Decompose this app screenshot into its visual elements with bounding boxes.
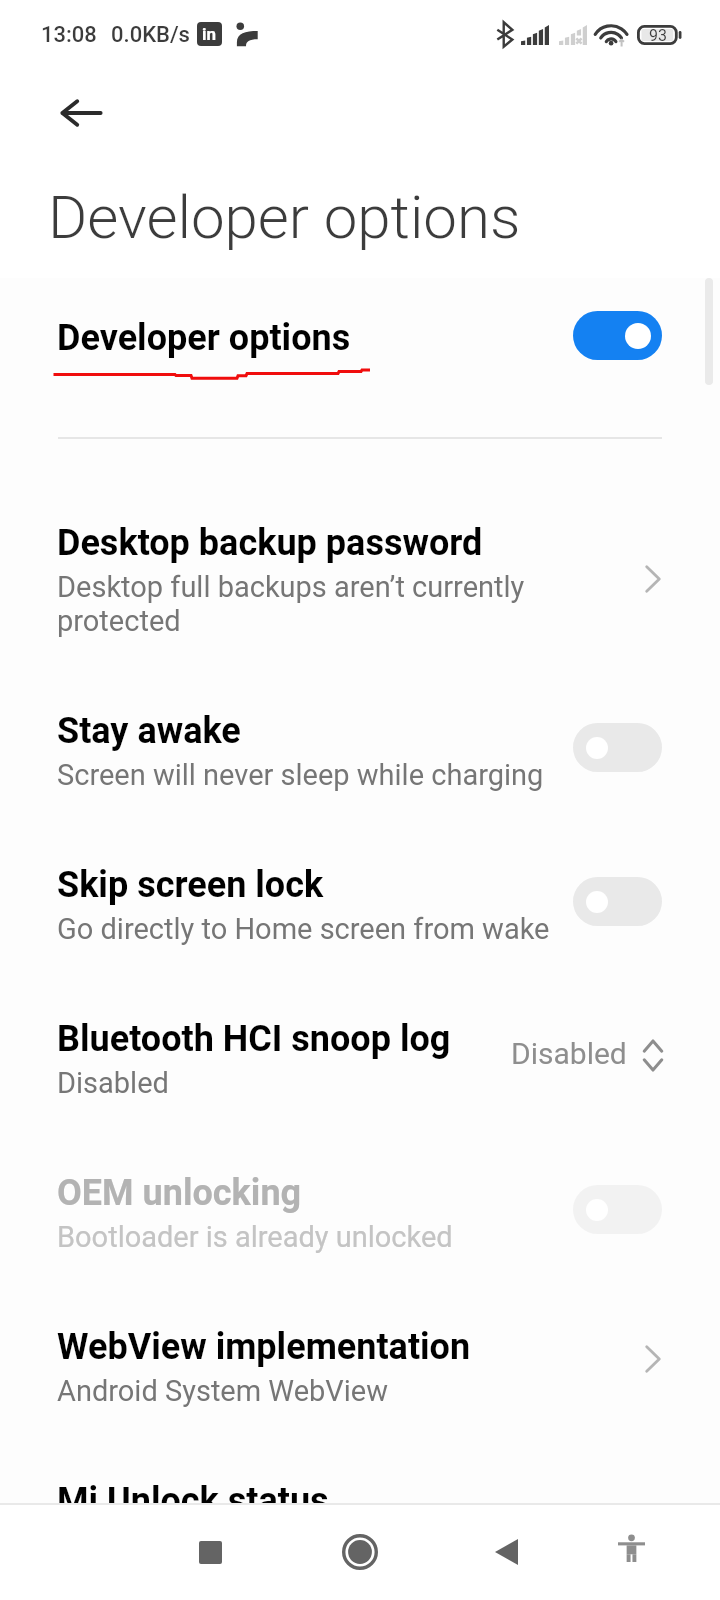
staticText: Skip screen lock xyxy=(57,864,324,906)
button[interactable]: WebView implementation xyxy=(0,1307,720,1417)
staticText: Bootloader is already unlocked xyxy=(57,1220,453,1254)
button[interactable]: Toggle xyxy=(573,877,662,926)
button[interactable]: Open xyxy=(633,559,673,599)
staticText: Desktop full backups aren’t currently pr… xyxy=(57,570,525,638)
button[interactable]: Stay awake xyxy=(0,691,720,801)
staticText: Developer options xyxy=(48,182,521,252)
button[interactable]: Skip screen lock xyxy=(0,845,720,955)
staticText: Go directly to Home screen from wake xyxy=(57,912,550,946)
button[interactable]: Disabled xyxy=(508,1029,668,1073)
staticText: Mi Unlock status xyxy=(57,1480,329,1522)
button[interactable]: Accessibility xyxy=(598,1515,664,1581)
button[interactable]: Toggle xyxy=(573,1185,662,1234)
staticText: Bluetooth HCI snoop log xyxy=(57,1018,451,1060)
button[interactable]: Developer options toggle xyxy=(573,311,662,360)
button[interactable]: Back xyxy=(48,80,114,146)
staticText: Developer options xyxy=(57,317,351,359)
staticText: WebView implementation xyxy=(57,1326,471,1368)
button[interactable]: Desktop backup password xyxy=(0,503,720,643)
staticText: in xyxy=(202,24,217,44)
button[interactable]: Open xyxy=(633,1339,673,1379)
button[interactable]: Recent apps xyxy=(177,1519,243,1585)
staticText: 13:08 xyxy=(41,22,97,48)
button[interactable]: Bluetooth HCI snoop log xyxy=(0,999,720,1109)
button[interactable]: OEM unlocking xyxy=(0,1153,720,1263)
staticText: 93 xyxy=(649,26,667,45)
button[interactable]: Back xyxy=(473,1519,539,1585)
staticText: 0.0KB/s xyxy=(111,22,190,48)
staticText: Android System WebView xyxy=(57,1374,389,1408)
staticText: Stay awake xyxy=(57,710,241,752)
staticText: Desktop backup password xyxy=(57,522,483,564)
staticText: Screen will never sleep while charging xyxy=(57,758,544,792)
button[interactable]: Mi Unlock status xyxy=(0,1461,720,1517)
staticText: OEM unlocking xyxy=(57,1172,302,1214)
button[interactable]: Developer options xyxy=(0,283,720,379)
staticText: Disabled xyxy=(57,1066,169,1100)
button[interactable]: Toggle xyxy=(573,723,662,772)
button[interactable]: Home xyxy=(327,1519,393,1585)
staticText: Disabled xyxy=(511,1036,627,1071)
